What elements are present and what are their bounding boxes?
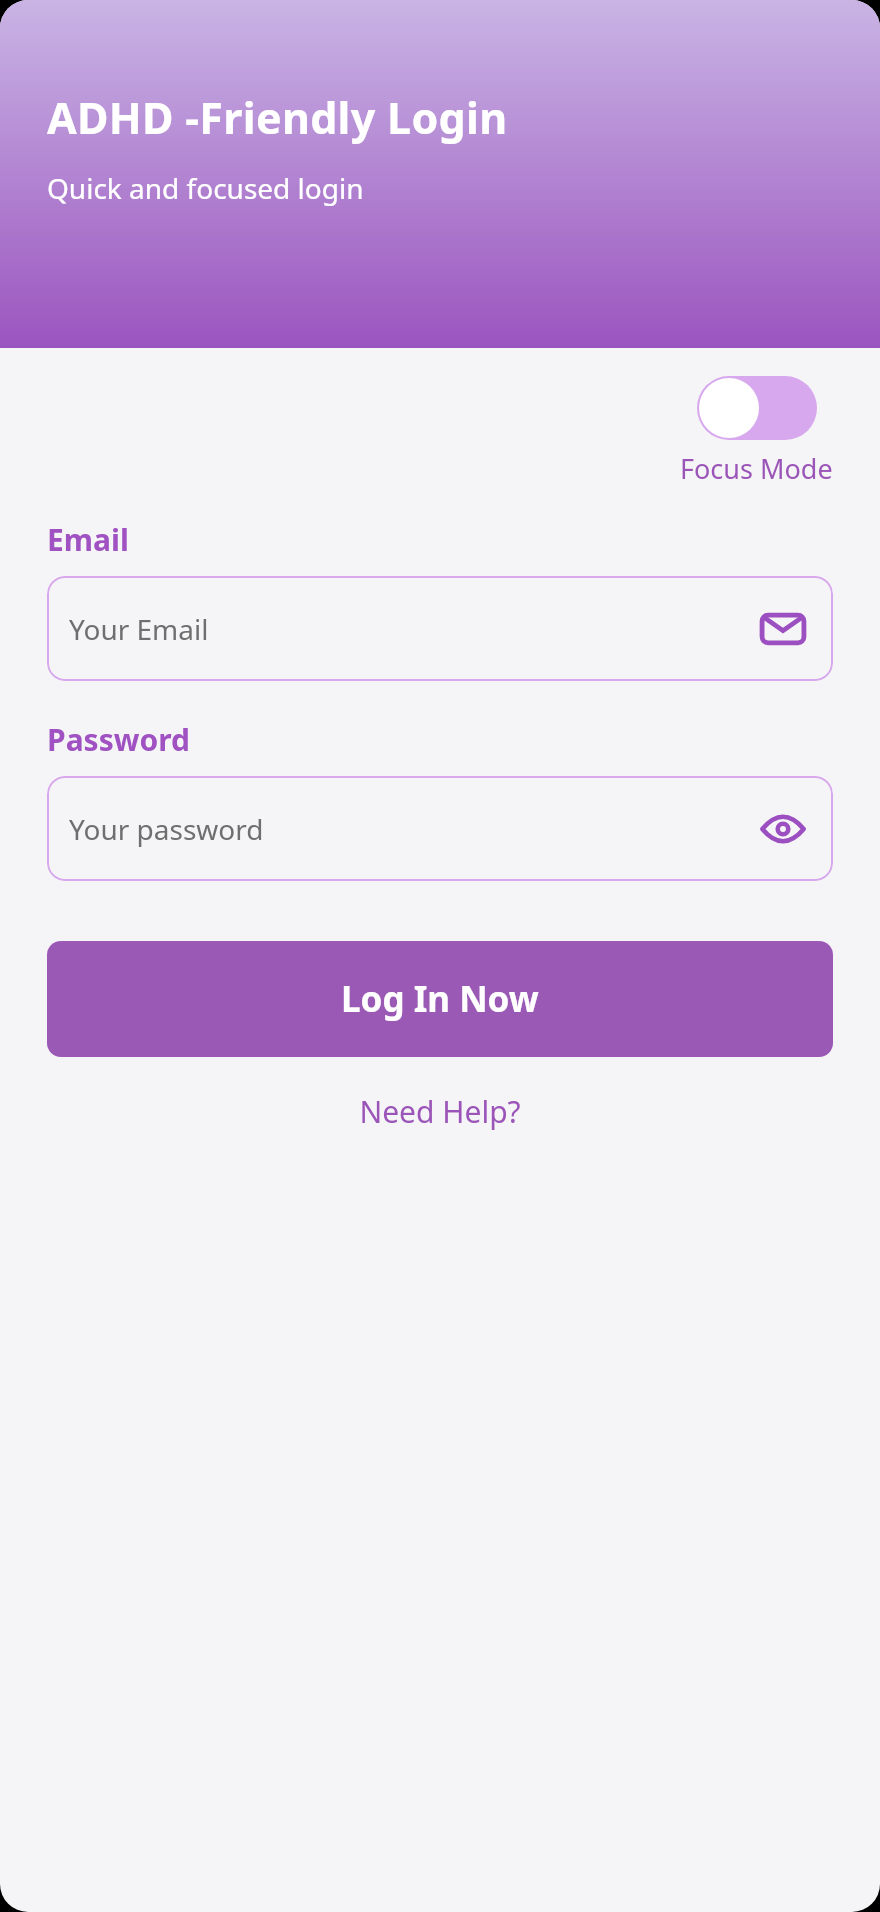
staticText: Your Email bbox=[69, 610, 209, 648]
staticText: Email bbox=[47, 519, 129, 560]
button[interactable]: Focus Mode bbox=[680, 376, 833, 487]
button[interactable]: Your password bbox=[47, 776, 833, 881]
staticText: Need Help? bbox=[359, 1091, 521, 1132]
staticText: ADHD -Friendly Login bbox=[47, 88, 508, 147]
other: Email bbox=[755, 601, 811, 657]
staticText: Password bbox=[47, 719, 190, 760]
button[interactable]: Log In Now bbox=[47, 941, 833, 1057]
staticText: Log In Now bbox=[341, 975, 539, 1023]
button[interactable]: Show password bbox=[755, 801, 811, 857]
button[interactable]: Your Email bbox=[47, 576, 833, 681]
button[interactable]: Need Help? bbox=[47, 1083, 833, 1140]
staticText: Focus Mode bbox=[680, 450, 833, 487]
staticText: Your password bbox=[69, 810, 264, 848]
staticText: Quick and focused login bbox=[47, 169, 364, 207]
